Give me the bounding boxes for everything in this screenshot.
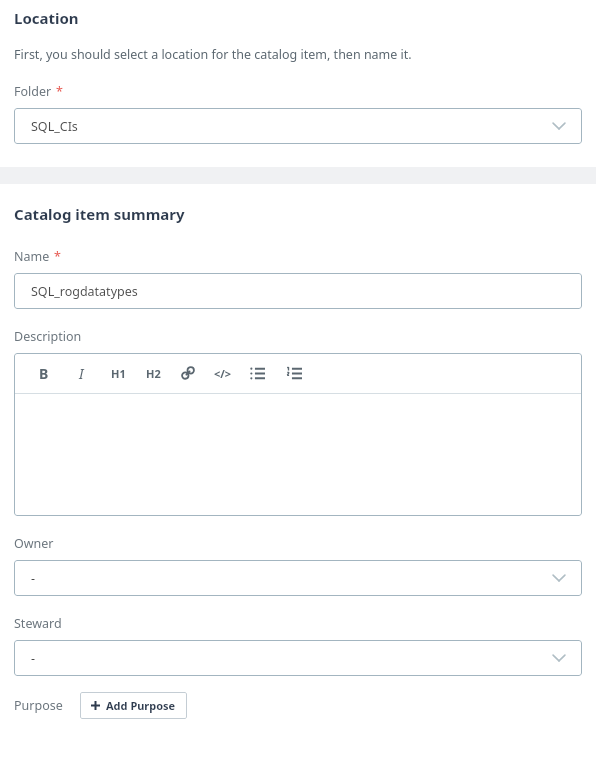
staticText: Owner bbox=[14, 535, 54, 552]
other: Open dropdown bbox=[550, 117, 568, 135]
staticText: SQL_CIs bbox=[31, 118, 78, 135]
button[interactable]: Code block bbox=[213, 359, 233, 387]
staticText: First, you should select a location for … bbox=[14, 46, 412, 63]
staticText: H2 bbox=[146, 366, 161, 381]
button[interactable]: Numbered list bbox=[284, 359, 304, 387]
button[interactable]: Add Purpose bbox=[80, 692, 187, 719]
staticText: Location bbox=[14, 8, 79, 28]
staticText: SQL_rogdatatypes bbox=[31, 283, 138, 300]
button[interactable]: Bulleted list bbox=[247, 359, 267, 387]
button[interactable]: SQL_CIs bbox=[14, 108, 582, 144]
staticText: - bbox=[31, 650, 36, 667]
button[interactable]: - bbox=[14, 560, 582, 596]
staticText: B bbox=[39, 364, 49, 383]
staticText: Description bbox=[14, 328, 82, 345]
button[interactable] bbox=[14, 394, 582, 516]
button[interactable]: Insert link bbox=[178, 359, 198, 387]
staticText: Name bbox=[14, 248, 50, 265]
button[interactable]: Bold bbox=[34, 359, 54, 387]
button[interactable]: SQL_rogdatatypes bbox=[14, 273, 582, 309]
staticText: Purpose bbox=[14, 697, 63, 714]
staticText: </> bbox=[214, 366, 232, 381]
staticText: Folder bbox=[14, 83, 52, 100]
staticText: * bbox=[56, 83, 63, 100]
button[interactable]: Heading 1 bbox=[108, 359, 128, 387]
button[interactable]: Heading 2 bbox=[143, 359, 163, 387]
staticText: Steward bbox=[14, 615, 62, 632]
other: Open dropdown bbox=[550, 569, 568, 587]
other: Open dropdown bbox=[550, 649, 568, 667]
button[interactable]: Italic bbox=[71, 359, 91, 387]
staticText: - bbox=[31, 570, 36, 587]
staticText: * bbox=[54, 248, 61, 265]
staticText: I bbox=[79, 364, 84, 383]
staticText: Add Purpose bbox=[106, 698, 176, 713]
button[interactable]: - bbox=[14, 640, 582, 676]
staticText: Catalog item summary bbox=[14, 204, 185, 224]
staticText: H1 bbox=[111, 366, 126, 381]
